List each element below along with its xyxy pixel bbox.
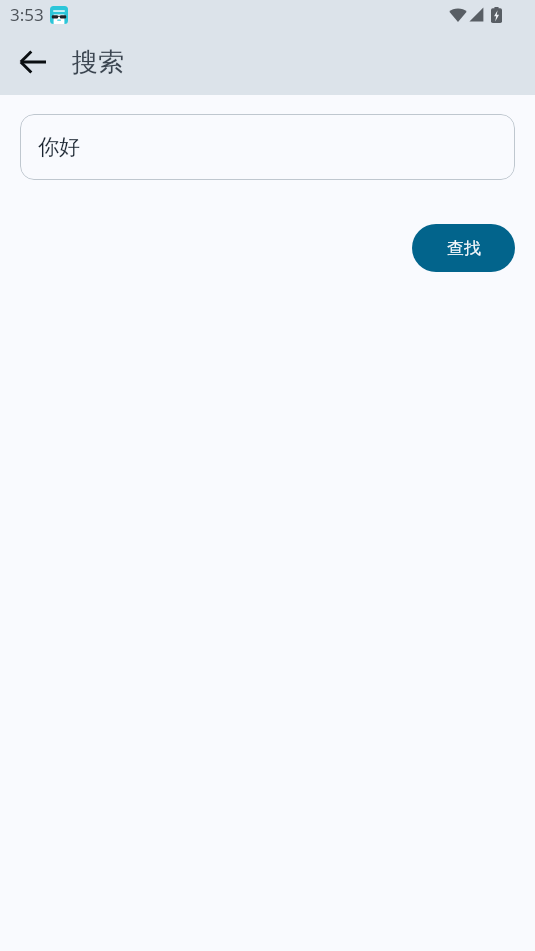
button[interactable]: Back — [9, 38, 57, 86]
staticText: 查找 — [447, 238, 481, 259]
button[interactable]: 查找 — [412, 224, 515, 272]
staticText: 你好 — [38, 134, 80, 160]
staticText: 3:53 — [10, 3, 44, 26]
staticText: 搜索 — [72, 46, 124, 79]
button[interactable]: 你好 — [20, 114, 515, 180]
